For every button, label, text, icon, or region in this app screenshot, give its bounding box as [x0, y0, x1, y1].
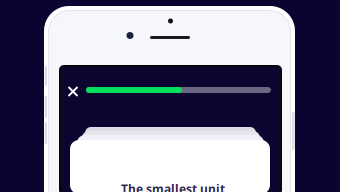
button[interactable]: The smallest unit — [70, 140, 270, 192]
staticText: The smallest unit — [121, 181, 225, 192]
button[interactable]: Close lesson — [62, 80, 84, 102]
